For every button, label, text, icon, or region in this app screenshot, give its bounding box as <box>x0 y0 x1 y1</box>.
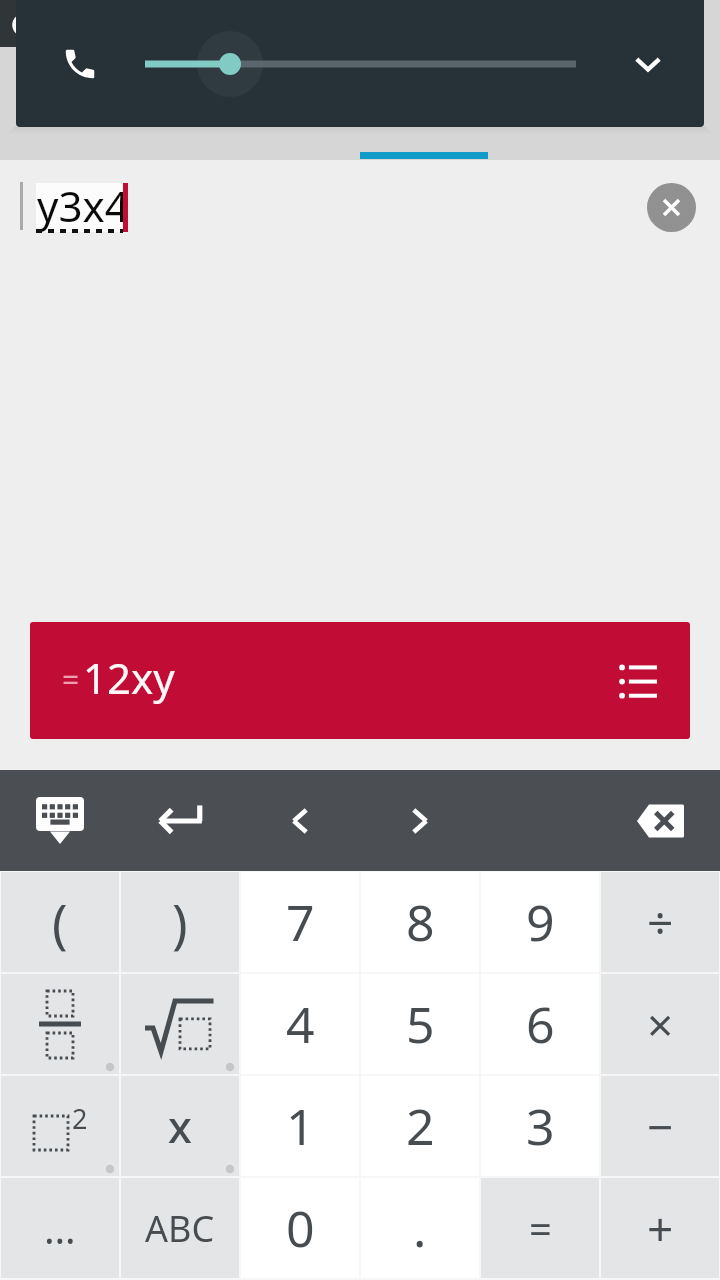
button[interactable]: 9 <box>481 872 599 972</box>
staticText: 4 <box>286 990 315 1058</box>
button[interactable]: . <box>361 1178 479 1278</box>
button[interactable]: = <box>481 1178 599 1278</box>
staticText: 0 <box>286 1194 315 1262</box>
staticText: x <box>168 1096 192 1156</box>
button[interactable]: 4 <box>241 974 359 1074</box>
staticText: 2 <box>72 1100 88 1137</box>
button[interactable]: Square root <box>121 974 239 1074</box>
button[interactable]: Backspace <box>600 770 720 871</box>
button[interactable]: = <box>30 622 690 739</box>
staticText: 2 <box>406 1092 435 1160</box>
staticText: 7 <box>286 888 315 956</box>
button[interactable]: 5 <box>361 974 479 1074</box>
button[interactable]: x <box>121 1076 239 1176</box>
staticText: = <box>529 1201 552 1255</box>
staticText: ABC <box>145 1204 215 1253</box>
button[interactable]: Clear <box>647 183 696 232</box>
staticText: 6 <box>526 990 555 1058</box>
button[interactable]: 8 <box>361 872 479 972</box>
button[interactable]: 6 <box>481 974 599 1074</box>
button[interactable]: ABC <box>121 1178 239 1278</box>
button[interactable]: … <box>1 1178 119 1278</box>
button[interactable]: ) <box>121 872 239 972</box>
staticText: ÷ <box>647 891 674 954</box>
button[interactable]: Power <box>1 1076 119 1176</box>
button[interactable]: Call volume <box>16 0 144 127</box>
button[interactable]: + <box>601 1178 719 1278</box>
staticText: 5 <box>406 990 435 1058</box>
button[interactable]: 7 <box>241 872 359 972</box>
button[interactable] <box>144 0 591 127</box>
button[interactable]: ( <box>1 872 119 972</box>
button[interactable]: Fraction <box>1 974 119 1074</box>
button[interactable]: Enter <box>120 770 240 871</box>
button[interactable]: 1 <box>241 1076 359 1176</box>
button[interactable]: Result list <box>616 659 660 703</box>
button[interactable]: 2 <box>361 1076 479 1176</box>
staticText: − <box>647 1095 674 1158</box>
staticText: . <box>413 1194 427 1262</box>
button[interactable]: ÷ <box>601 872 719 972</box>
button[interactable]: − <box>601 1076 719 1176</box>
staticText: 9 <box>526 888 555 956</box>
staticText: = <box>62 659 80 700</box>
button[interactable]: Next <box>360 770 480 871</box>
staticText: + <box>647 1197 674 1260</box>
button[interactable]: 0 <box>241 1178 359 1278</box>
staticText: 3 <box>526 1092 555 1160</box>
button[interactable]: × <box>601 974 719 1074</box>
staticText: 12xy <box>83 649 175 706</box>
staticText: 1 <box>286 1092 315 1160</box>
button[interactable]: 3 <box>481 1076 599 1176</box>
staticText: × <box>647 993 674 1056</box>
staticText: y3x4 <box>37 177 129 234</box>
staticText: … <box>44 1201 76 1255</box>
button[interactable]: Hide keyboard <box>0 770 120 871</box>
staticText: ) <box>172 887 188 958</box>
button[interactable]: Previous <box>240 770 360 871</box>
staticText: 8 <box>406 888 435 956</box>
staticText: ( <box>52 887 68 958</box>
button[interactable]: Expand <box>591 0 704 127</box>
